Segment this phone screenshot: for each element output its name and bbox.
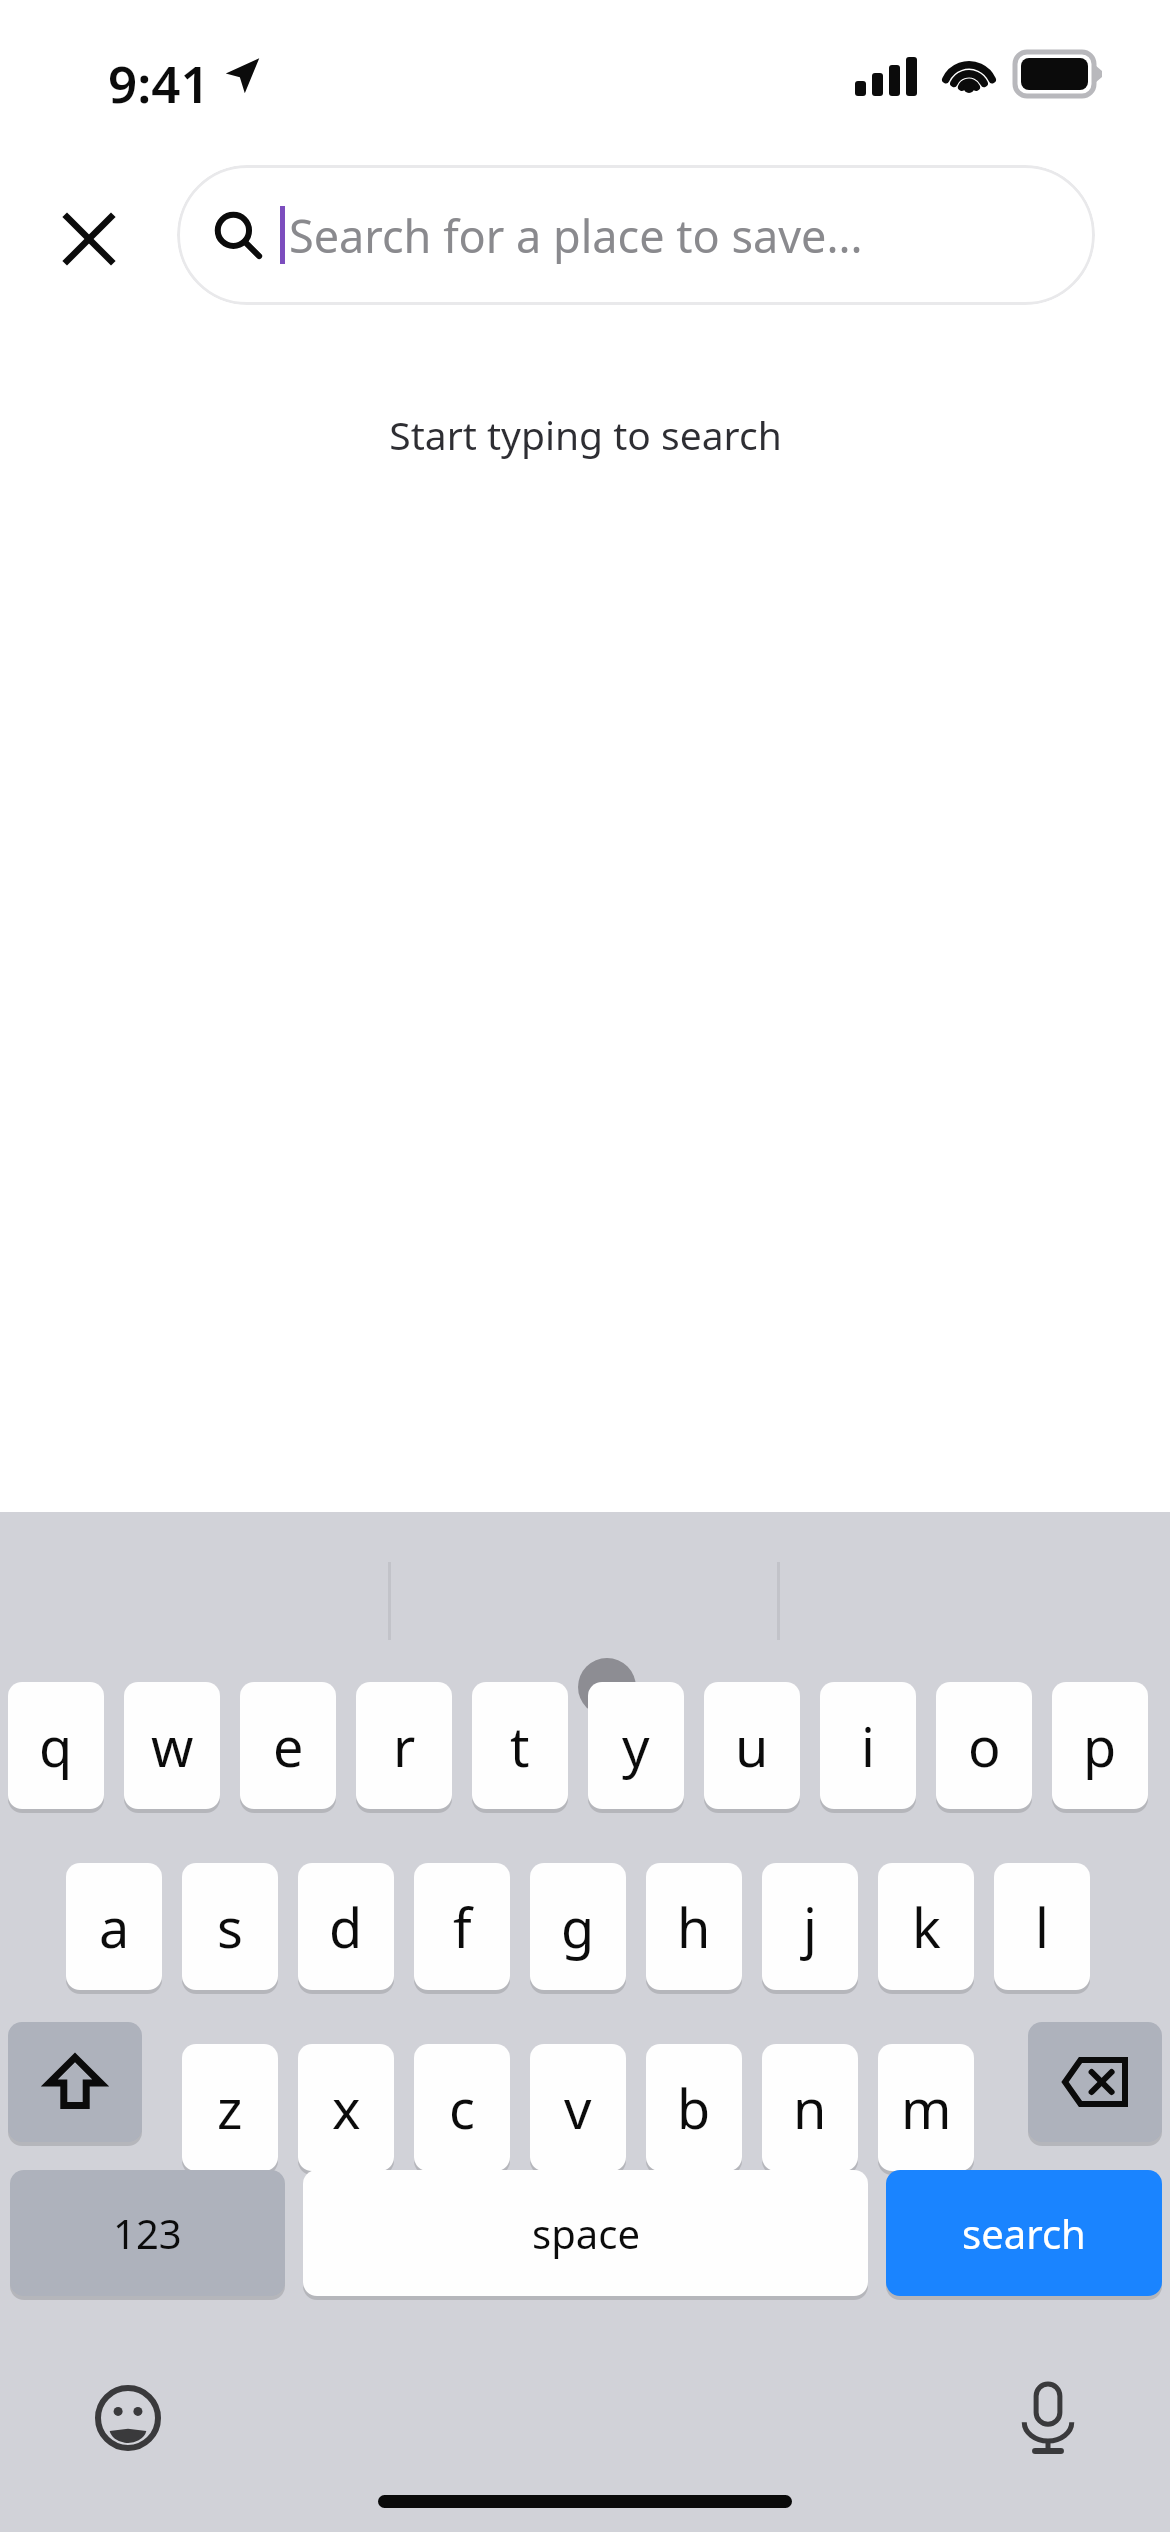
staticText: d	[329, 1890, 363, 1964]
button[interactable]: d	[298, 1863, 394, 1990]
button[interactable]: u	[704, 1682, 800, 1809]
staticText: h	[677, 1890, 711, 1964]
staticText: m	[901, 2071, 952, 2145]
staticText: s	[217, 1890, 243, 1964]
staticText: k	[912, 1890, 941, 1964]
button[interactable]: r	[356, 1682, 452, 1809]
staticText: p	[1083, 1709, 1117, 1783]
staticText: q	[39, 1709, 73, 1783]
staticText: u	[735, 1709, 769, 1783]
button[interactable]: b	[646, 2044, 742, 2171]
button[interactable]: Dictation	[998, 2368, 1098, 2468]
button[interactable]: Search for a place to save...	[177, 165, 1095, 305]
button[interactable]: q	[8, 1682, 104, 1809]
staticText: c	[449, 2071, 475, 2145]
button[interactable]: g	[530, 1863, 626, 1990]
staticText: search	[962, 2206, 1086, 2260]
button[interactable]: l	[994, 1863, 1090, 1990]
button[interactable]: Emoji keyboard	[78, 2368, 178, 2468]
button[interactable]: o	[936, 1682, 1032, 1809]
button[interactable]: Close	[40, 190, 138, 288]
staticText: y	[622, 1709, 650, 1783]
staticText: space	[532, 2206, 640, 2260]
staticText: v	[564, 2071, 592, 2145]
staticText: 123	[113, 2206, 182, 2260]
button[interactable]: y	[588, 1682, 684, 1809]
button[interactable]: c	[414, 2044, 510, 2171]
button[interactable]: w	[124, 1682, 220, 1809]
staticText: r	[393, 1709, 416, 1783]
staticText: g	[561, 1890, 595, 1964]
staticText: t	[510, 1709, 530, 1783]
button[interactable]: Shift	[8, 2022, 142, 2142]
staticText: w	[151, 1709, 194, 1783]
button[interactable]: m	[878, 2044, 974, 2171]
staticText: Search for a place to save...	[289, 205, 863, 266]
staticText: o	[968, 1709, 1001, 1783]
staticText: Start typing to search	[389, 408, 782, 461]
button[interactable]: z	[182, 2044, 278, 2171]
button[interactable]: s	[182, 1863, 278, 1990]
button[interactable]: e	[240, 1682, 336, 1809]
staticText: e	[273, 1709, 304, 1783]
staticText: i	[861, 1709, 875, 1783]
staticText: l	[1035, 1890, 1049, 1964]
button[interactable]: a	[66, 1863, 162, 1990]
button[interactable]: search	[886, 2170, 1162, 2296]
button[interactable]: j	[762, 1863, 858, 1990]
button[interactable]: x	[298, 2044, 394, 2171]
button[interactable]: t	[472, 1682, 568, 1809]
button[interactable]: h	[646, 1863, 742, 1990]
staticText: b	[677, 2071, 711, 2145]
staticText: j	[803, 1890, 817, 1964]
staticText: f	[453, 1890, 472, 1964]
staticText: n	[793, 2071, 827, 2145]
button[interactable]: Backspace	[1028, 2022, 1162, 2142]
button[interactable]: n	[762, 2044, 858, 2171]
staticText: a	[99, 1890, 130, 1964]
staticText: 9:41	[108, 48, 210, 117]
button[interactable]: space	[303, 2170, 868, 2296]
button[interactable]: v	[530, 2044, 626, 2171]
button[interactable]: i	[820, 1682, 916, 1809]
button[interactable]: f	[414, 1863, 510, 1990]
button[interactable]: p	[1052, 1682, 1148, 1809]
button[interactable]: 123	[10, 2170, 285, 2296]
staticText: z	[217, 2071, 243, 2145]
staticText: x	[332, 2071, 361, 2145]
button[interactable]: k	[878, 1863, 974, 1990]
